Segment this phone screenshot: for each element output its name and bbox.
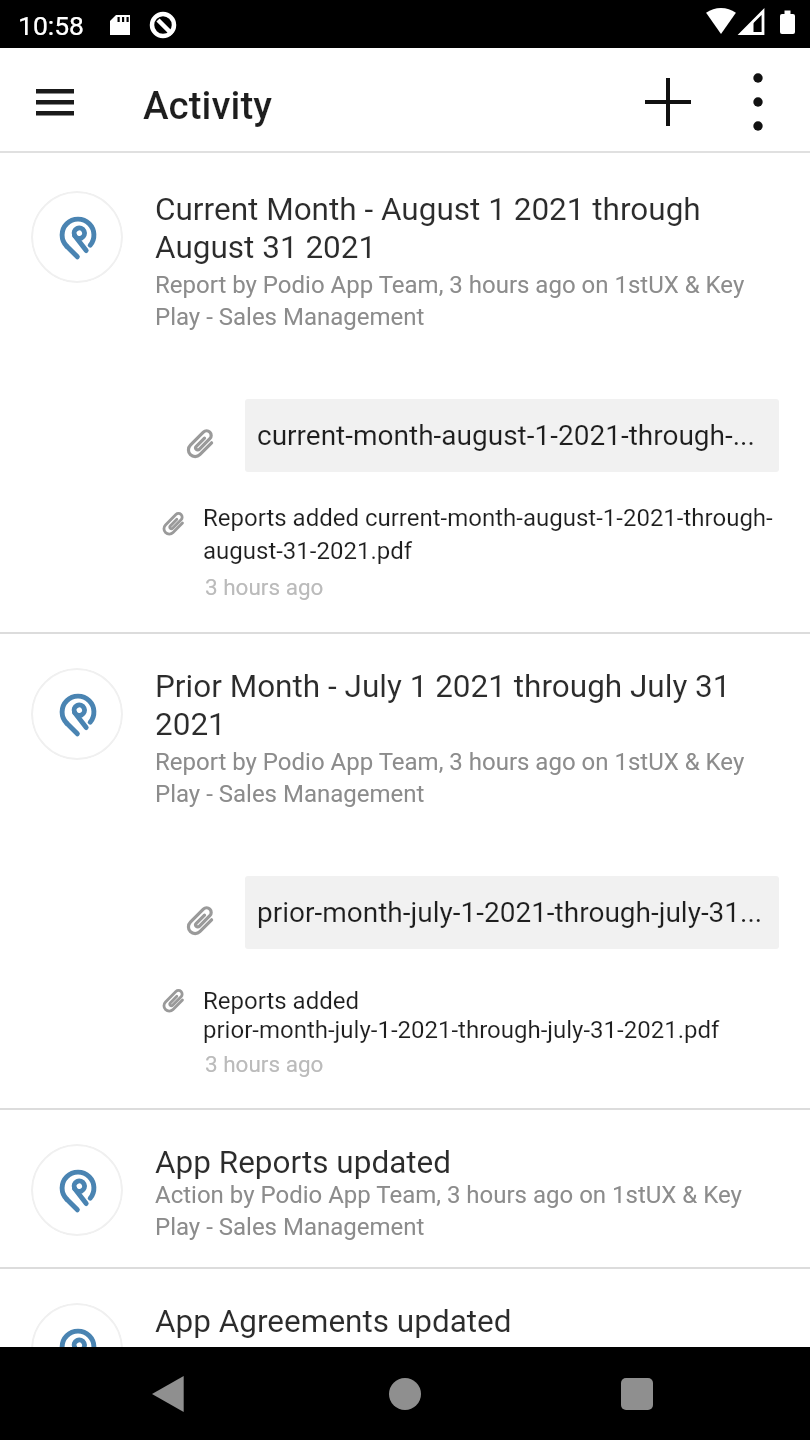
button[interactable] — [22, 74, 88, 130]
staticText: current-month-august-1-2021-through-... — [257, 419, 755, 452]
staticText: 10:58 — [18, 10, 84, 41]
button[interactable] — [636, 70, 700, 134]
button[interactable]: Current Month - August 1 2021 through Au… — [0, 155, 810, 247]
button[interactable]: App Reports updated — [0, 1108, 810, 1200]
staticText: Report by Podio App Team, 3 hours ago on… — [155, 271, 745, 331]
staticText: Action by Podio App Team, 3 hours ago on… — [155, 1181, 742, 1241]
button[interactable]: prior-month-july-1-2021-through-july-31.… — [245, 876, 779, 949]
button[interactable]: current-month-august-1-2021-through-... — [245, 399, 779, 472]
staticText: Reports added current-month-august-1-202… — [203, 504, 773, 565]
button[interactable]: Prior Month - July 1 2021 through July 3… — [0, 632, 810, 724]
staticText: Activity — [143, 83, 272, 128]
staticText: Report by Podio App Team, 3 hours ago on… — [155, 748, 745, 808]
button[interactable] — [587, 1347, 687, 1440]
staticText: 3 hours ago — [205, 574, 324, 600]
button[interactable] — [355, 1347, 455, 1440]
staticText: prior-month-july-1-2021-through-july-31.… — [257, 896, 763, 929]
staticText: App Reports updated — [155, 1144, 452, 1181]
staticText: Reports added prior-month-july-1-2021-th… — [203, 987, 720, 1044]
staticText: App Agreements updated — [155, 1303, 512, 1340]
button[interactable] — [120, 1347, 220, 1440]
staticText: 3 hours ago — [205, 1051, 324, 1077]
staticText: Prior Month - July 1 2021 through July 3… — [155, 668, 731, 743]
button[interactable]: App Agreements updated — [0, 1267, 810, 1359]
staticText: Current Month - August 1 2021 through Au… — [155, 191, 701, 266]
button[interactable] — [728, 54, 788, 150]
